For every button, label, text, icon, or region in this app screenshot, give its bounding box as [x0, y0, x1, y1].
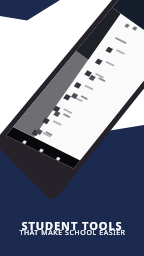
staticText: THAT MAKE SCHOOL EASIER — [19, 228, 126, 238]
staticText: STUDENT TOOLS — [21, 218, 123, 233]
